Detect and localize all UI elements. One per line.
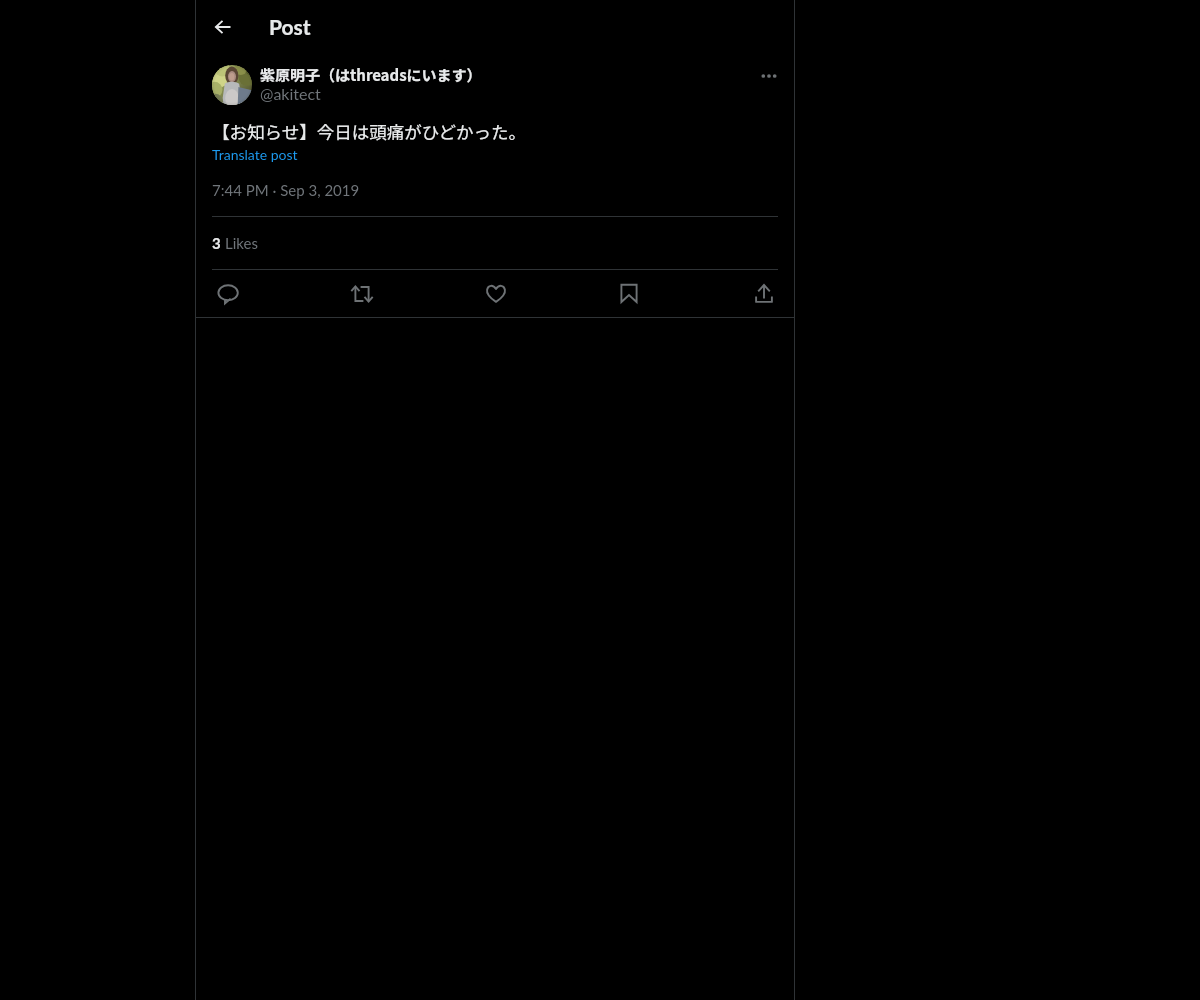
button[interactable]: Reply [212,277,246,311]
staticText: 7:44 PM · Sep 3, 2019 [212,181,360,199]
button[interactable]: More options [755,62,783,90]
button[interactable]: Share [744,277,778,311]
button[interactable]: Bookmark [611,277,645,311]
staticText: 3 [212,234,221,252]
button[interactable]: 3 [212,234,258,252]
button[interactable]: Like [478,277,512,311]
staticText: 紫原明子（はthreadsにいます） [260,64,482,86]
staticText: 【お知らせ】今日は頭痛がひどかった。 [212,119,527,144]
staticText: Post [269,14,311,39]
staticText: @akitect [260,84,321,103]
staticText: Likes [225,234,258,252]
staticText: Translate post [212,146,298,163]
button[interactable]: Translate post [212,146,298,163]
button[interactable]: Back [207,11,239,43]
button[interactable]: Repost [345,277,379,311]
